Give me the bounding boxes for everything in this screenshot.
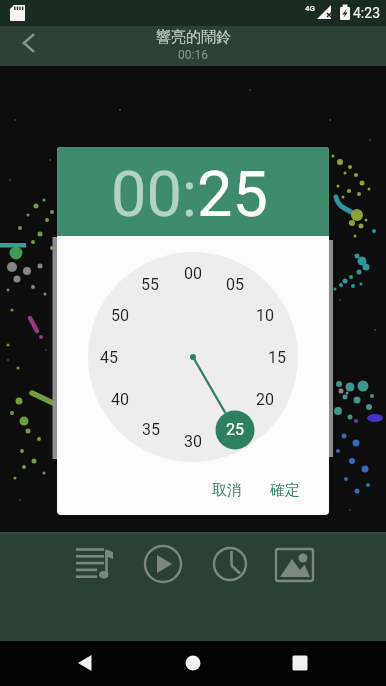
button[interactable] (8, 28, 48, 66)
staticText: 4:23 (353, 5, 380, 21)
staticText: 05 (226, 275, 244, 294)
staticText: 確定 (270, 481, 300, 500)
button[interactable] (139, 540, 187, 588)
staticText: 4G (305, 4, 315, 13)
staticText: 25 (226, 420, 244, 439)
button[interactable]: 25 (215, 418, 255, 440)
staticText: 55 (141, 275, 159, 294)
staticText: 40 (111, 390, 129, 409)
button[interactable]: 確定 (261, 475, 309, 505)
staticText: 15 (268, 348, 286, 367)
staticText: 35 (142, 420, 160, 439)
button[interactable] (276, 641, 324, 686)
staticText: 45 (100, 348, 118, 367)
staticText: 20 (256, 390, 274, 409)
button[interactable] (169, 641, 217, 686)
button[interactable]: 取消 (203, 475, 251, 505)
button[interactable] (70, 540, 118, 588)
staticText: 10 (256, 306, 274, 325)
staticText: 響亮的鬧鈴 (156, 28, 231, 47)
button[interactable] (61, 641, 109, 686)
button[interactable] (271, 540, 319, 588)
staticText: 30 (184, 432, 202, 451)
staticText: 00:16 (178, 48, 208, 62)
staticText: 50 (111, 306, 129, 325)
staticText: 00 (184, 264, 202, 283)
button[interactable] (206, 540, 254, 588)
staticText: 取消 (212, 481, 242, 500)
staticText: 00:25 (111, 158, 268, 232)
